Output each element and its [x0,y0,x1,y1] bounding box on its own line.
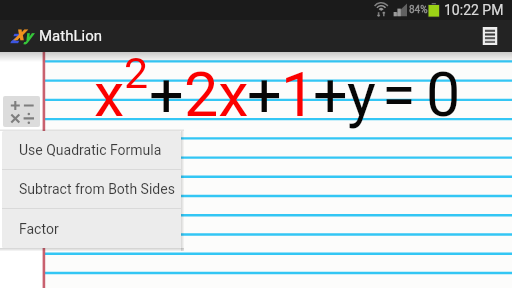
staticText: z [11,27,20,47]
staticText: 0 [426,59,461,130]
staticText: + [149,59,184,130]
button[interactable]: Use Quadratic Formula [2,131,181,169]
staticText: + [313,59,348,130]
button[interactable]: Factor [2,209,181,248]
staticText: 10:22 PM [444,2,504,18]
button[interactable]: Math operations [3,96,40,127]
staticText: x [94,59,125,130]
staticText: y [25,28,32,44]
staticText: 2x [184,59,249,130]
button[interactable]: Notes [479,21,501,51]
staticText: 2 [124,48,149,98]
staticText: Subtract from Both Sides [19,181,175,197]
staticText: = [382,59,416,130]
staticText: MathLion [39,27,102,45]
staticText: y [347,59,376,130]
button[interactable]: Subtract from Both Sides [2,170,181,208]
staticText: Use Quadratic Formula [19,142,162,158]
staticText: + [247,59,282,130]
staticText: 84% [409,4,428,16]
staticText: Factor [19,221,59,237]
staticText: x [15,22,25,44]
staticText: 1 [281,59,316,130]
